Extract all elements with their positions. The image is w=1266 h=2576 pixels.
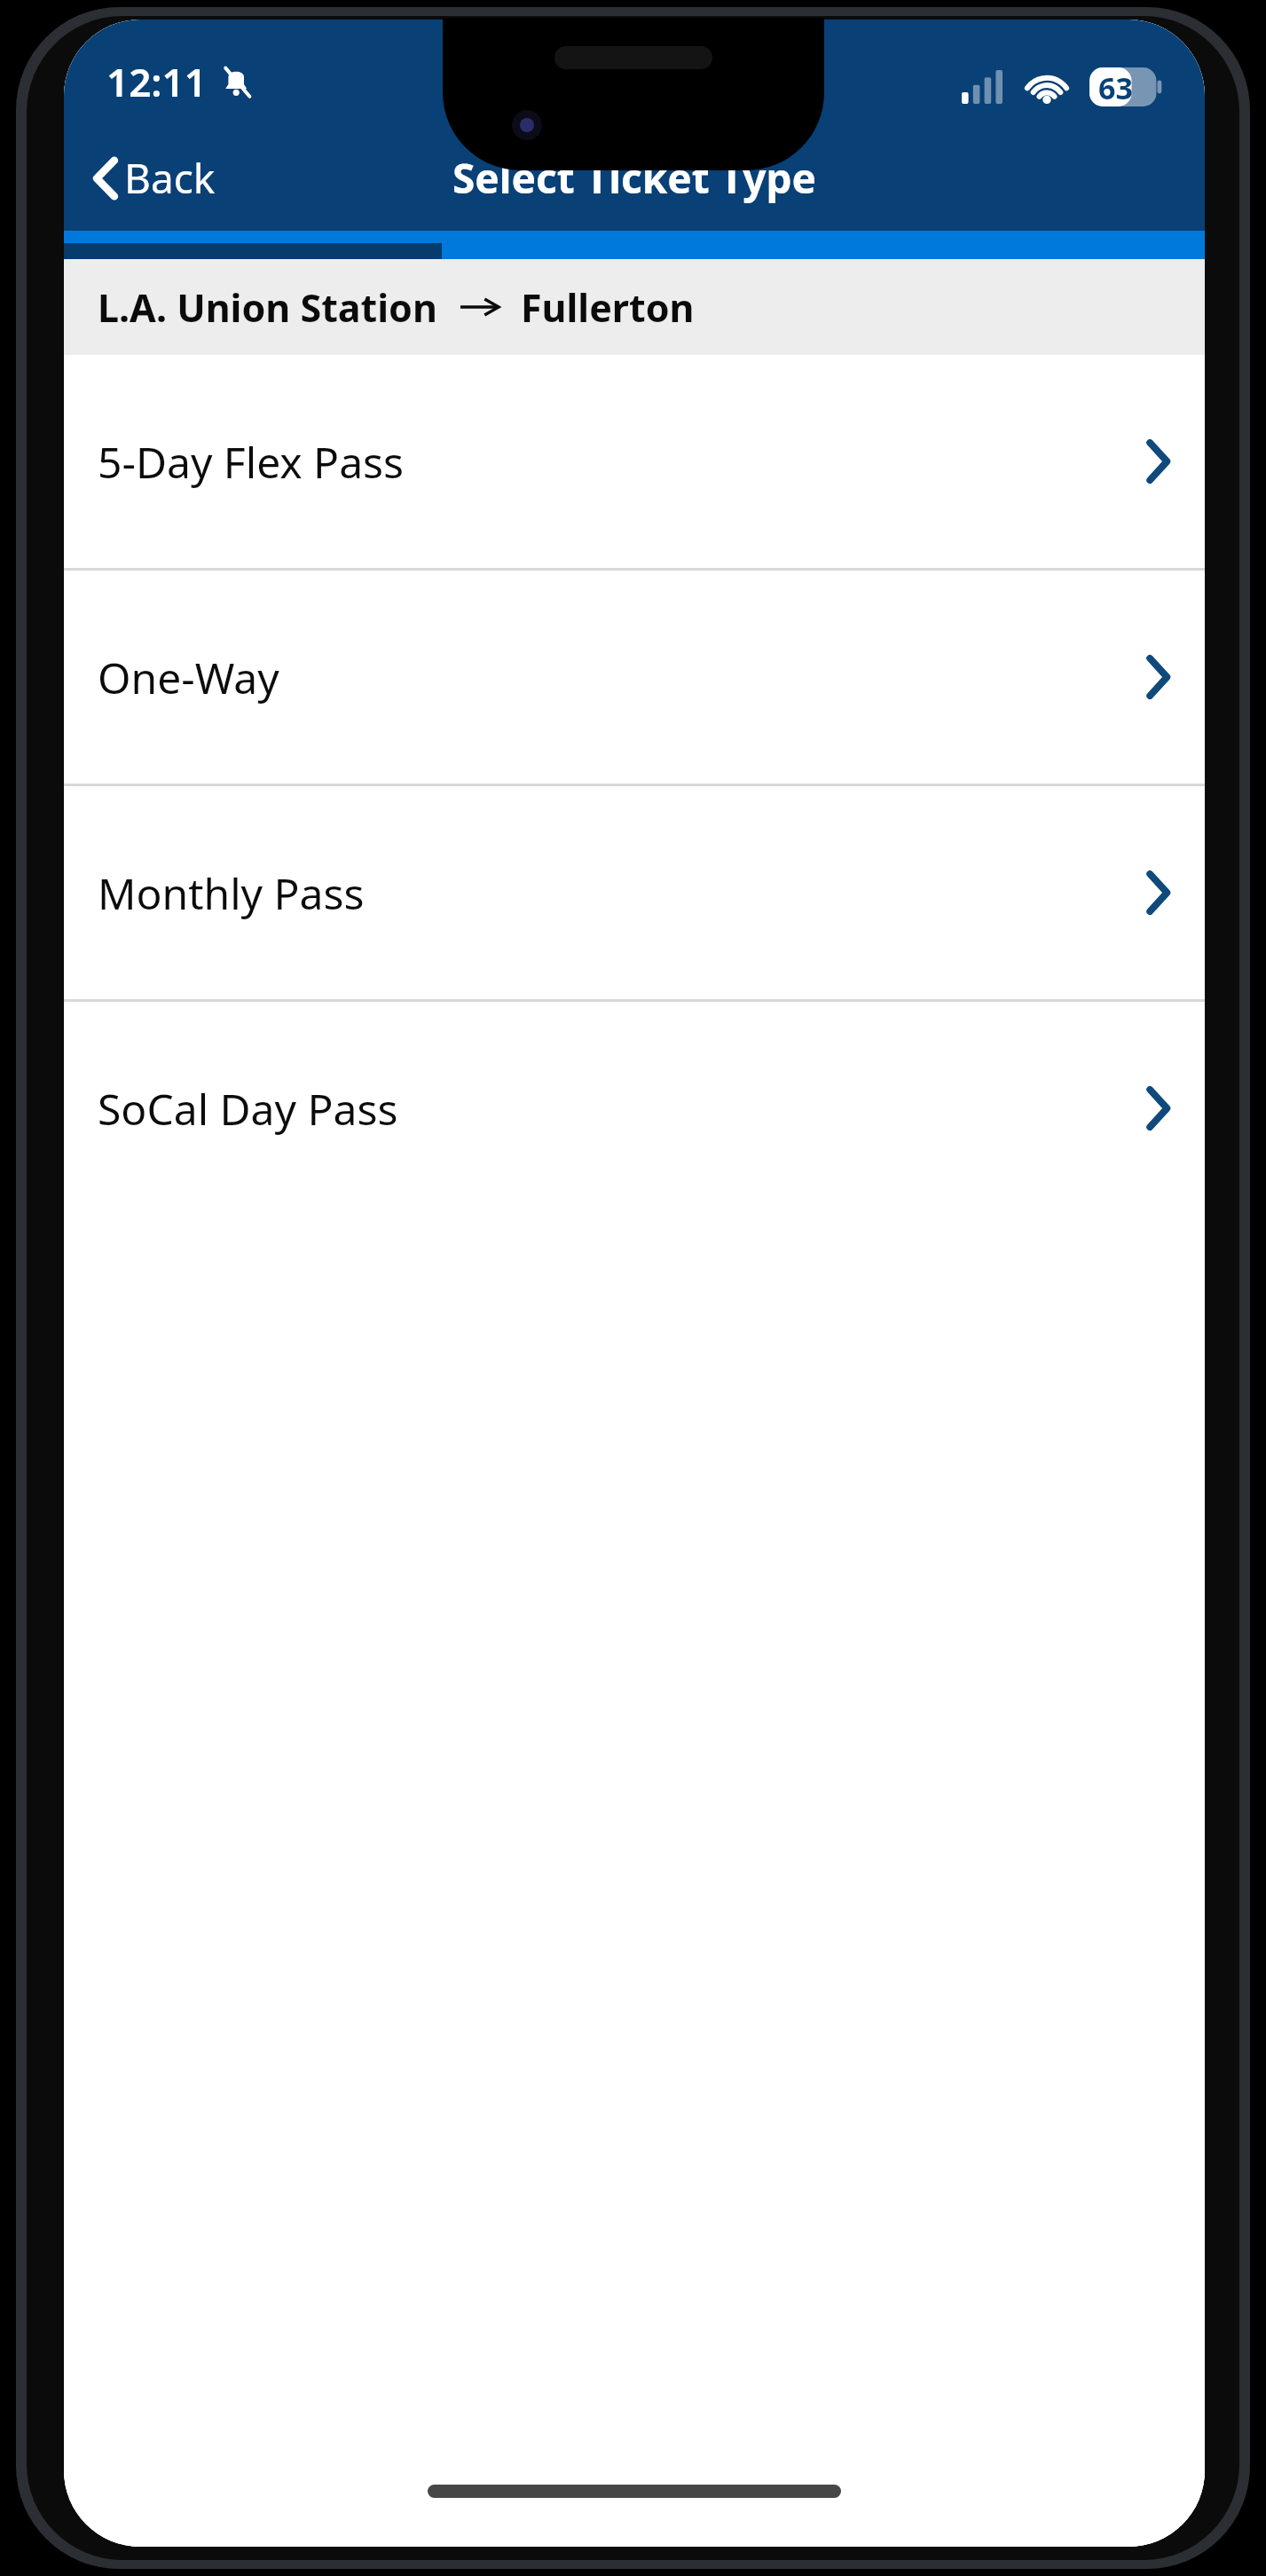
staticText: SoCal Day Pass — [98, 1080, 398, 1138]
button[interactable]: One-Way — [64, 571, 1205, 784]
staticText: 63 — [1098, 67, 1133, 106]
staticText: One-Way — [98, 649, 279, 706]
staticText: Back — [124, 150, 216, 206]
button[interactable]: Monthly Pass — [64, 786, 1205, 999]
staticText: Fullerton — [521, 281, 695, 334]
staticText: L.A. Union Station — [98, 281, 437, 334]
button[interactable]: Back — [83, 139, 226, 217]
button[interactable]: SoCal Day Pass — [64, 1002, 1205, 1215]
staticText: Select Ticket Type — [452, 150, 816, 206]
staticText: 5-Day Flex Pass — [98, 433, 405, 491]
staticText: 12:11 — [106, 55, 207, 108]
staticText: Monthly Pass — [98, 864, 365, 922]
button[interactable]: 5-Day Flex Pass — [64, 355, 1205, 568]
